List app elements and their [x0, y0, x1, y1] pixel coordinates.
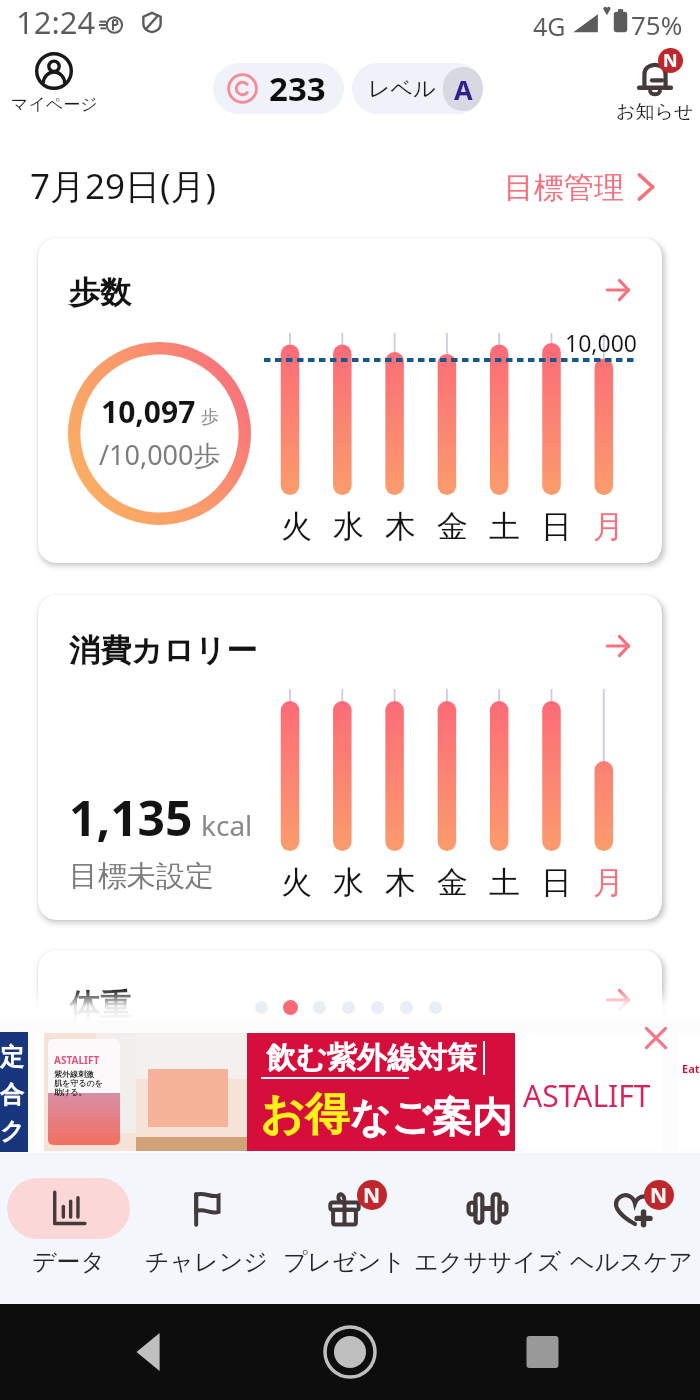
button[interactable]: 閉じる [644, 1026, 668, 1050]
staticText: お得 [260, 1087, 350, 1142]
staticText: ヘルスケア [570, 1247, 693, 1277]
staticText: マイページ [11, 94, 98, 115]
staticText: チャレンジ [145, 1247, 268, 1277]
staticText: ASTALIFT [54, 1053, 100, 1067]
staticText: 合 [0, 1080, 24, 1110]
staticText: 歩 [201, 406, 219, 429]
staticText: 12:24 [16, 1, 96, 43]
staticText: 日 [541, 863, 572, 899]
staticText: Eat W [682, 1061, 700, 1076]
staticText: プレゼント [283, 1247, 406, 1277]
staticText: 金 [437, 863, 468, 899]
button[interactable]: 体重 [38, 950, 662, 1150]
other: マイページ [35, 52, 73, 90]
staticText: kcal [201, 806, 253, 844]
staticText: 肌を守るのを [54, 1078, 103, 1088]
staticText: N [650, 1181, 668, 1210]
button[interactable]: 体重の詳細 [606, 988, 630, 1012]
staticText: 土 [489, 863, 520, 899]
button[interactable]: エクササイズ [413, 1153, 562, 1277]
staticText: A [454, 71, 473, 108]
button[interactable]: 233 [213, 63, 344, 114]
staticText: /10,000歩 [99, 436, 221, 473]
staticText: 木 [385, 507, 416, 543]
staticText: 紫外線刺激 [54, 1069, 94, 1079]
staticText: 75% [631, 7, 683, 42]
staticText: お知らせ [616, 100, 694, 124]
button[interactable]: 消費カロリー [38, 595, 662, 920]
staticText: 10,000 [565, 327, 637, 358]
staticText: 消費カロリー [69, 631, 258, 670]
staticText: N [663, 48, 678, 73]
staticText: N [363, 1181, 381, 1210]
staticText: 土 [489, 507, 520, 543]
button[interactable]: ASTALIFT [36, 1033, 663, 1151]
staticText: 金 [437, 507, 468, 543]
staticText: 体重 [69, 986, 131, 1025]
button[interactable]: 目標管理 [504, 169, 660, 207]
staticText: 飲む紫外線対策 [266, 1039, 477, 1077]
button[interactable]: チャレンジ [137, 1153, 275, 1277]
staticText: ク [0, 1116, 25, 1146]
button[interactable]: データ [0, 1153, 137, 1277]
staticText: 火 [281, 863, 312, 899]
staticText: 水 [333, 863, 364, 899]
other: お知らせ [633, 53, 677, 97]
button[interactable]: 消費カロリーの詳細 [606, 634, 630, 658]
staticText: 233 [269, 66, 326, 111]
staticText: 助ける。 [54, 1087, 87, 1097]
staticText: レベル [368, 75, 436, 103]
staticText: 木 [385, 863, 416, 899]
button[interactable]: 歩数 [38, 238, 662, 563]
staticText: なご案内 [350, 1092, 512, 1142]
staticText: 定 [0, 1042, 24, 1072]
staticText: エクササイズ [414, 1247, 562, 1277]
button[interactable]: N [562, 1153, 700, 1277]
staticText: 目標未設定 [69, 858, 214, 895]
button[interactable]: 歩数の詳細 [606, 278, 630, 302]
button[interactable]: マイページ [2, 52, 106, 115]
staticText: 歩数 [69, 273, 131, 312]
staticText: 月 [593, 863, 624, 899]
staticText: 火 [281, 507, 312, 543]
staticText: 7月29日(月) [30, 162, 217, 210]
staticText: 4G [533, 9, 566, 43]
staticText: 水 [333, 507, 364, 543]
staticText: 月 [593, 507, 624, 543]
button[interactable]: レベル [352, 63, 483, 114]
staticText: 10,097 [101, 391, 196, 432]
staticText: 1,135 [69, 785, 193, 850]
button[interactable]: N [275, 1153, 413, 1277]
staticText: データ [32, 1247, 106, 1277]
button[interactable]: お知らせ [608, 53, 700, 124]
staticText: 日 [541, 507, 572, 543]
staticText: ASTALIFT [523, 1075, 651, 1116]
staticText: 目標管理 [504, 169, 624, 207]
